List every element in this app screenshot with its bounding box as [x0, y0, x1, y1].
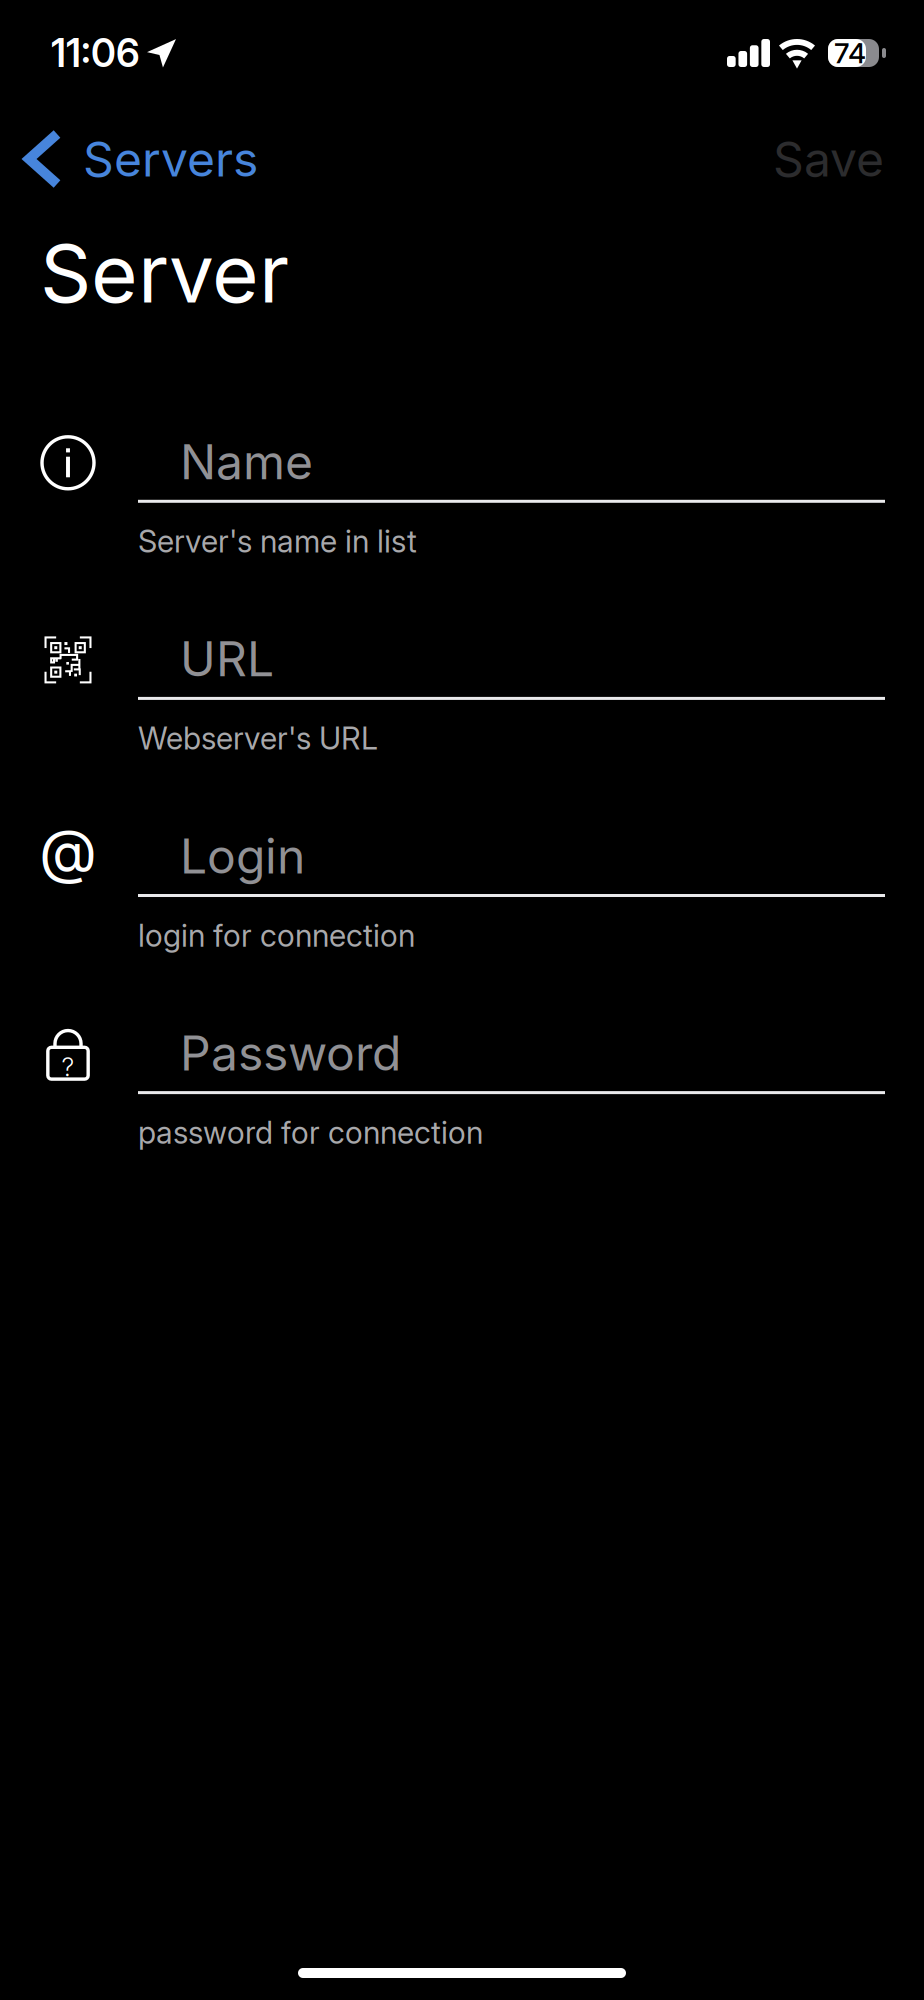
staticText: Name: [180, 433, 313, 491]
staticText: URL: [180, 630, 274, 688]
staticText: Server's name in list: [138, 523, 417, 560]
staticText: password for connection: [138, 1114, 483, 1151]
staticText: Login: [180, 827, 305, 885]
staticText: login for connection: [138, 917, 415, 954]
staticText: Server: [40, 225, 289, 322]
button[interactable]: Servers: [0, 104, 282, 214]
staticText: 11:06: [51, 30, 140, 76]
staticText: Save: [773, 130, 884, 188]
staticText: Password: [180, 1024, 401, 1082]
staticText: @: [39, 815, 97, 887]
staticText: Webserver's URL: [138, 720, 378, 757]
staticText: 74: [834, 36, 866, 70]
staticText: ?: [61, 1052, 74, 1082]
staticText: Servers: [83, 130, 258, 188]
button[interactable]: Save: [753, 104, 904, 214]
